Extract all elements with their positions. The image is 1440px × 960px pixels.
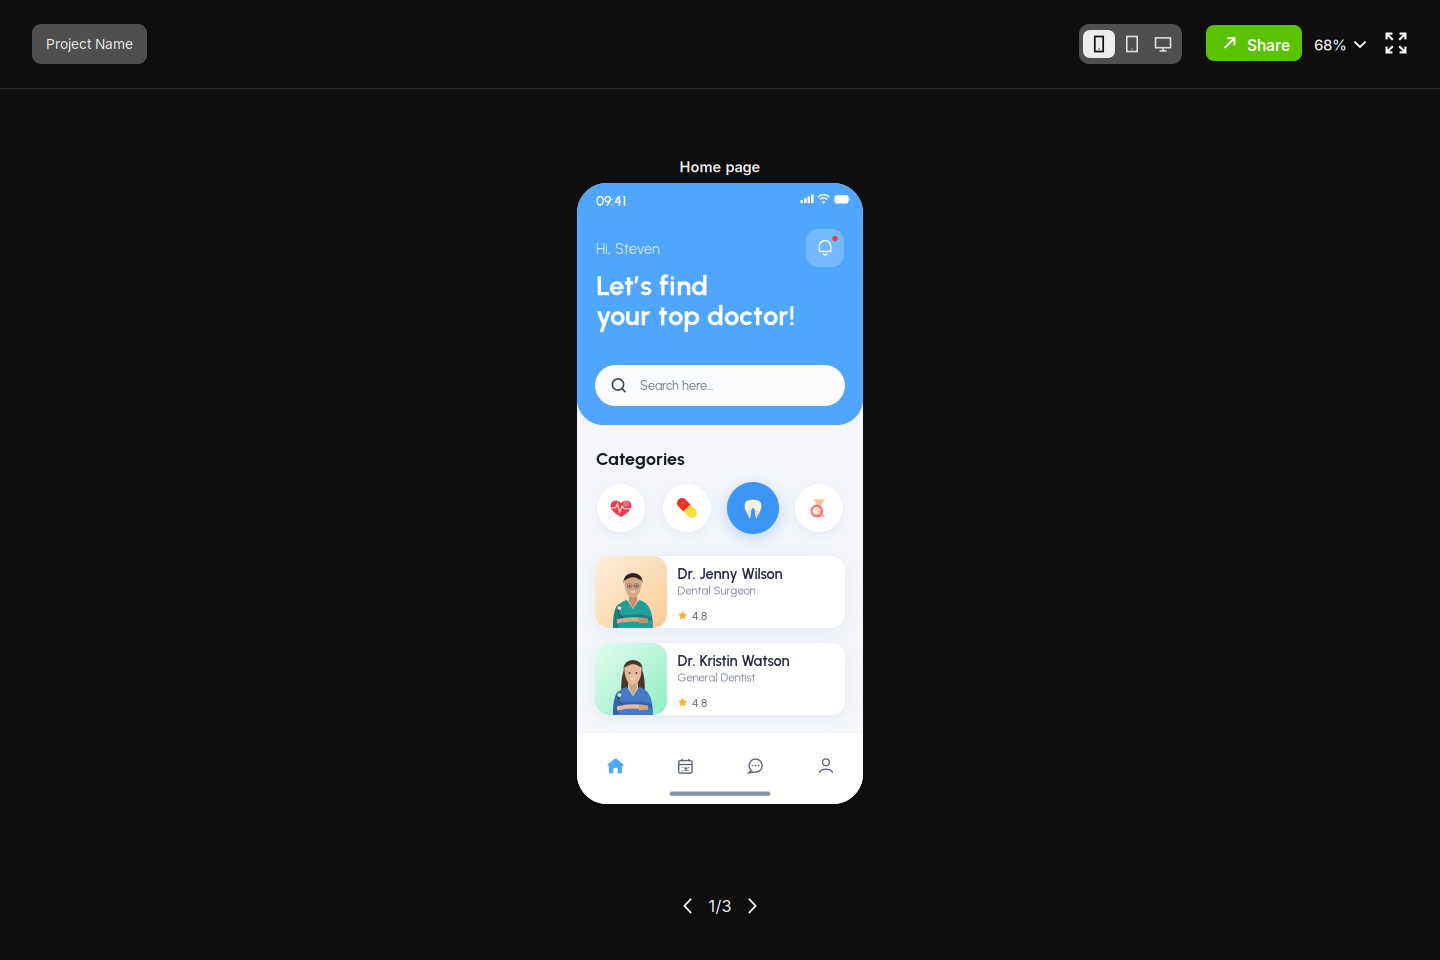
- button[interactable]: Home: [595, 755, 635, 777]
- staticText: 09:41: [596, 192, 626, 209]
- button[interactable]: Profile: [806, 755, 846, 777]
- staticText: Dr. Jenny Wilson: [677, 565, 782, 583]
- staticText: Home page: [679, 158, 760, 176]
- button[interactable]: Dr. Jenny Wilson: [595, 556, 845, 628]
- button[interactable]: Tablet preview: [1116, 30, 1148, 58]
- staticText: 4.8: [692, 608, 707, 623]
- button[interactable]: Appointments: [665, 755, 705, 777]
- button[interactable]: Search: [595, 365, 845, 406]
- staticText: Dental Surgeon: [677, 583, 755, 597]
- button[interactable]: Next screen: [740, 895, 762, 917]
- button[interactable]: Fullscreen: [1385, 32, 1407, 54]
- staticText: Search here...: [640, 378, 713, 393]
- staticText: Share: [1247, 36, 1290, 55]
- staticText: Project Name: [46, 36, 133, 52]
- staticText: Categories: [596, 448, 685, 469]
- staticText: General Dentist: [677, 670, 755, 684]
- button[interactable]: Cardiology: [595, 482, 647, 534]
- button[interactable]: Dr. Kristin Watson: [595, 643, 845, 715]
- button[interactable]: Zoom level: [1314, 31, 1368, 57]
- staticText: Hi, Steven: [596, 240, 660, 258]
- button[interactable]: Project Name: [32, 24, 147, 64]
- button[interactable]: Desktop preview: [1147, 30, 1179, 58]
- button[interactable]: Notifications: [806, 229, 844, 267]
- staticText: 68%: [1314, 36, 1347, 54]
- staticText: 1/3: [708, 896, 731, 916]
- staticText: your top doctor!: [596, 299, 795, 332]
- staticText: Let’s find: [596, 269, 708, 302]
- staticText: 4.8: [692, 695, 707, 710]
- button[interactable]: Phone preview: [1083, 30, 1115, 58]
- button[interactable]: Maternity: [793, 482, 845, 534]
- button[interactable]: Previous screen: [677, 895, 699, 917]
- button[interactable]: Messages: [735, 755, 775, 777]
- button[interactable]: Dentist: [727, 482, 779, 534]
- button[interactable]: Share: [1206, 25, 1302, 61]
- staticText: Dr. Kristin Watson: [677, 652, 789, 670]
- button[interactable]: Pharmacy: [661, 482, 713, 534]
